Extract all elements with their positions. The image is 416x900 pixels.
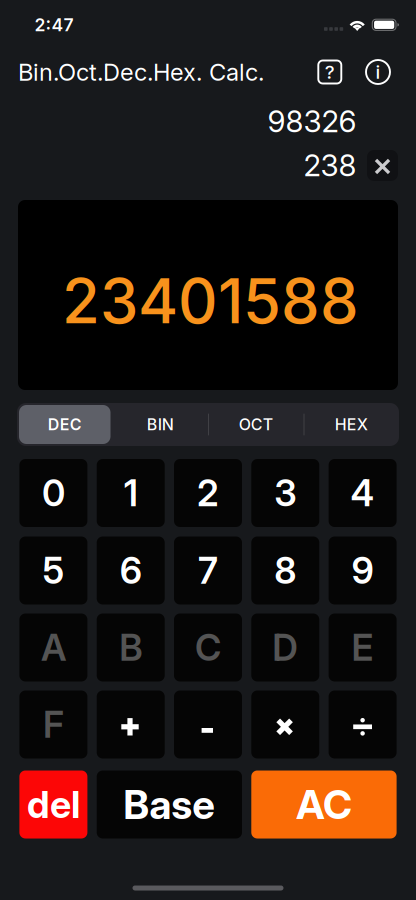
staticText: 7 [198,549,218,592]
button[interactable]: 4 [329,459,397,527]
button[interactable]: 5 [19,536,87,604]
staticText: del [27,782,80,827]
button[interactable]: HEX [303,403,399,446]
staticText: 6 [120,549,142,592]
button[interactable]: del [19,770,87,838]
staticText: 23401588 [62,264,359,338]
staticText: DEC [48,415,82,434]
button[interactable]: Clear last entry [367,150,398,181]
staticText: 2:47 [35,14,74,35]
button[interactable]: 8 [251,536,319,604]
button[interactable]: 7 [174,536,242,604]
button[interactable]: Info [366,60,390,84]
button[interactable]: 1 [97,459,165,527]
button[interactable]: D [251,613,319,681]
staticText: Base [123,780,215,829]
staticText: F [43,703,64,746]
button[interactable]: 3 [251,459,319,527]
button[interactable]: 6 [97,536,165,604]
staticText: Bin.Oct.Dec.Hex. Calc. [18,58,264,86]
button[interactable]: C [174,613,242,681]
staticText: E [352,626,374,669]
button[interactable]: 2 [174,459,242,527]
button[interactable]: 0 [19,459,87,527]
staticText: 1 [124,471,138,515]
staticText: 238 [303,147,356,183]
staticText: BIN [147,415,174,434]
staticText: A [41,626,66,669]
button[interactable]: 9 [329,536,397,604]
button[interactable]: Help [318,60,341,83]
staticText: C [195,626,221,669]
button[interactable]: B [97,613,165,681]
staticText: B [119,626,142,669]
button[interactable]: Divide [329,690,397,758]
staticText: 2 [197,471,219,515]
staticText: 5 [42,549,64,592]
staticText: HEX [335,415,368,434]
staticText: 3 [274,471,296,515]
button[interactable]: DEC [17,403,112,446]
staticText: 8 [274,549,296,592]
staticText: 9 [352,549,374,592]
button[interactable]: OCT [208,403,303,446]
button[interactable]: Add [97,690,165,758]
staticText: 4 [351,471,375,515]
button[interactable]: BIN [112,403,208,446]
button[interactable]: F [19,690,87,758]
button[interactable]: Subtract [174,690,242,758]
staticText: AC [296,780,352,829]
button[interactable]: Multiply [251,690,319,758]
button[interactable]: Base [97,770,242,838]
staticText: 0 [42,471,65,515]
staticText: D [272,626,298,669]
staticText: i [375,61,380,83]
button[interactable]: A [19,613,87,681]
button[interactable]: AC [251,770,397,838]
staticText: ? [325,61,335,83]
staticText: 98326 [267,103,356,139]
staticText: OCT [239,415,273,434]
button[interactable]: E [329,613,397,681]
